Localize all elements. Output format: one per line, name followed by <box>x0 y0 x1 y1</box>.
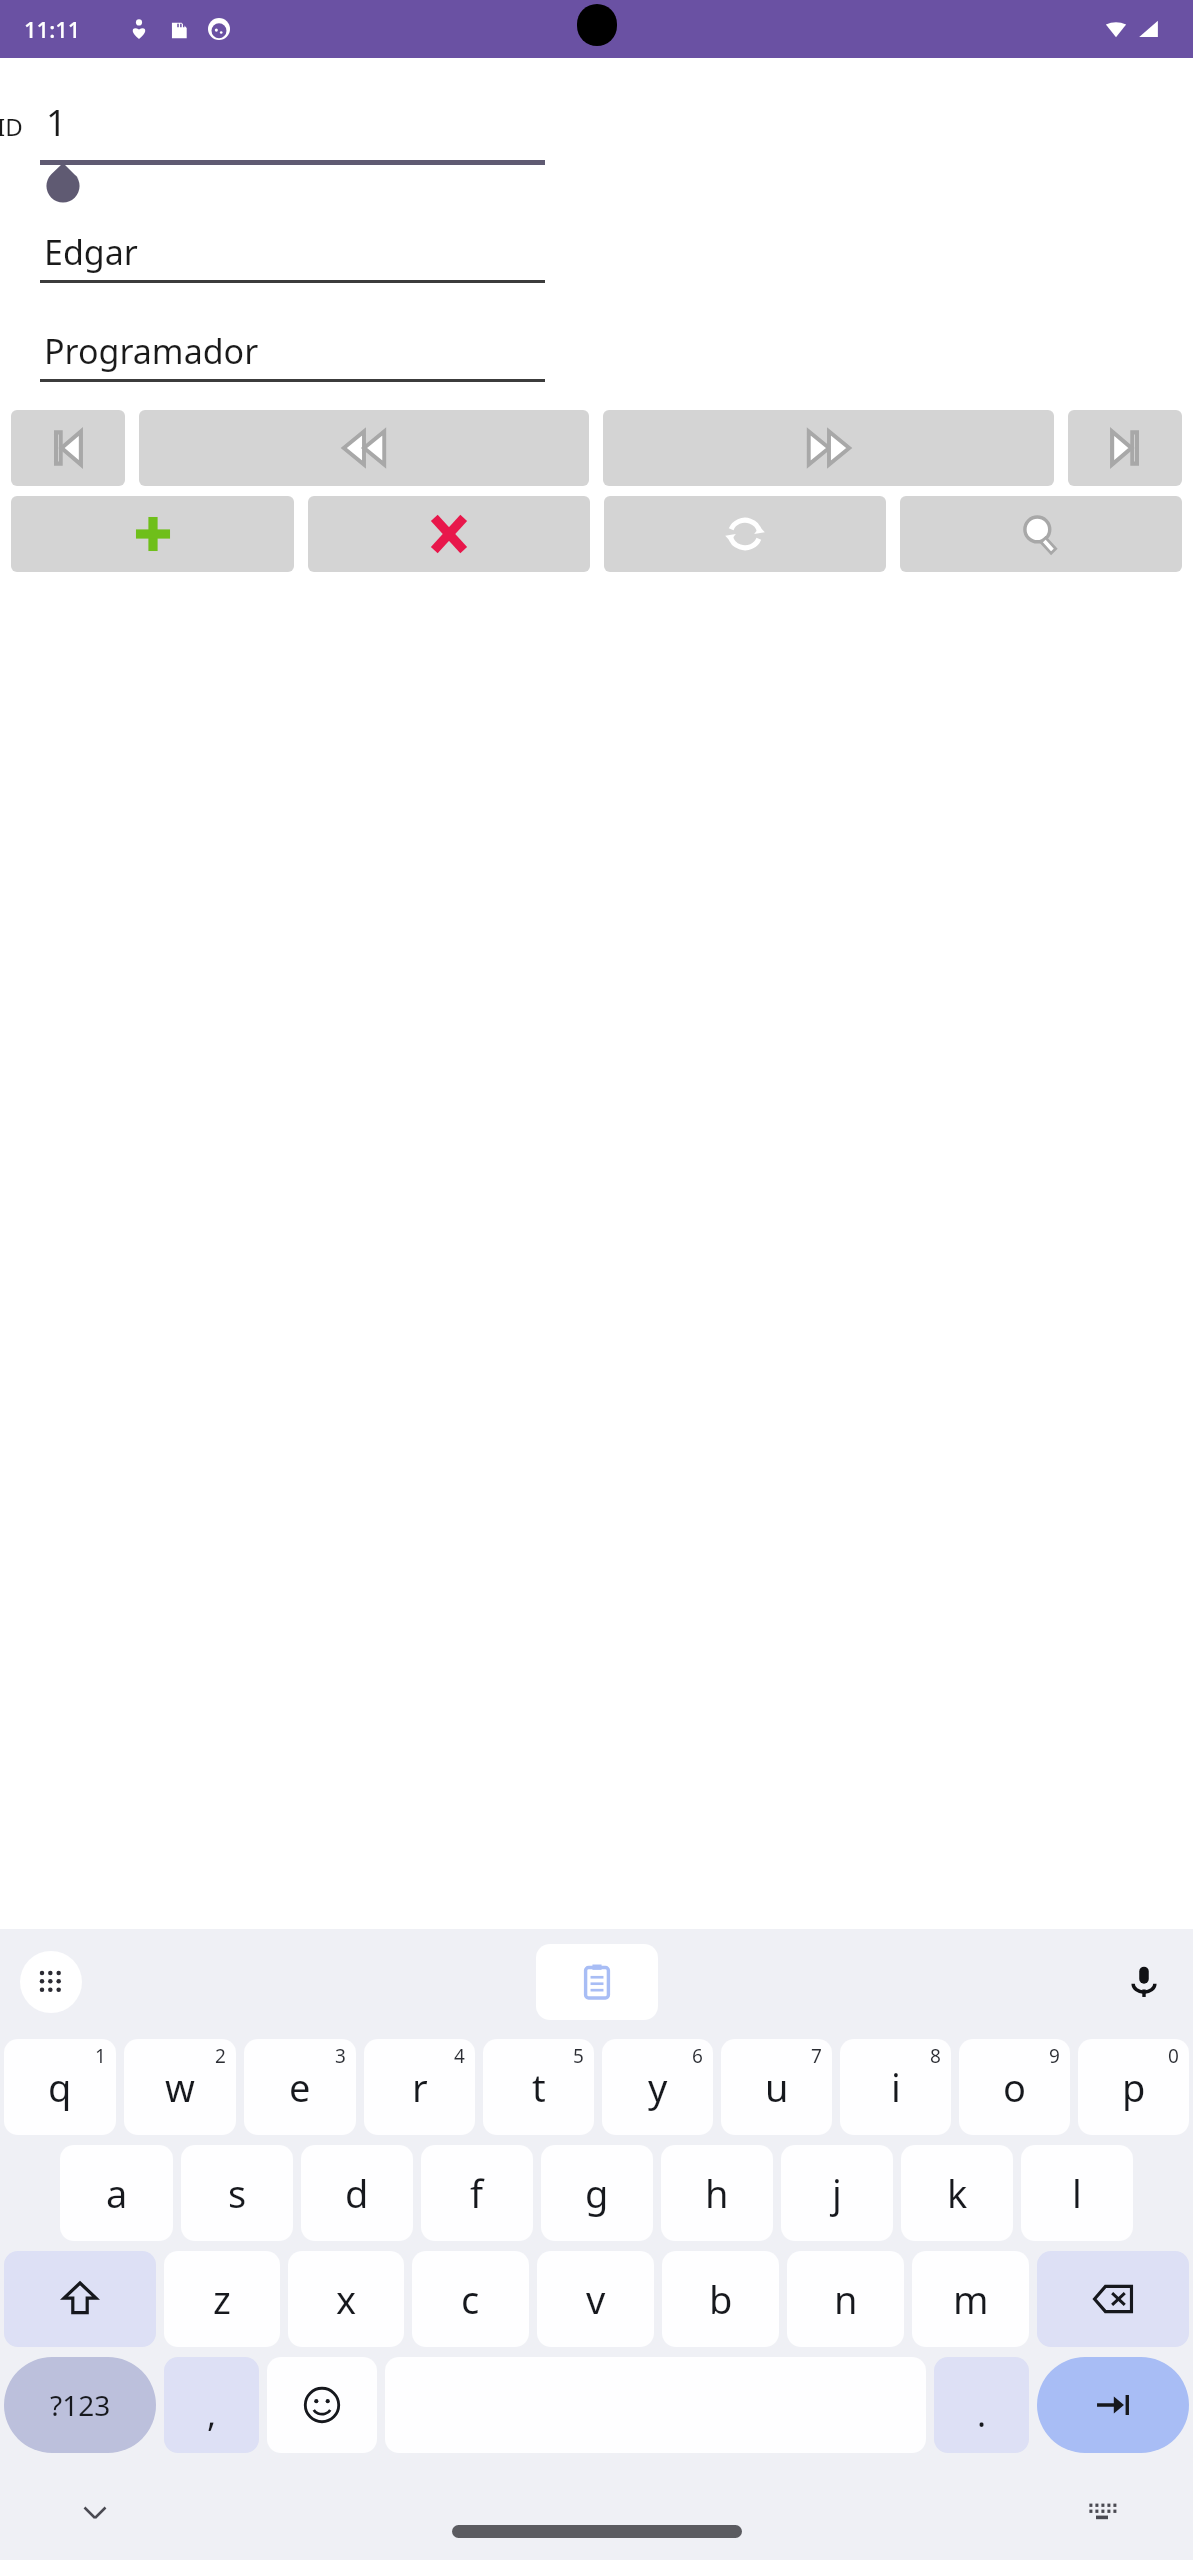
button[interactable]: Voz <box>1115 1953 1173 2011</box>
button[interactable]: c <box>412 2251 529 2347</box>
staticText: 2 <box>215 2043 226 2069</box>
button[interactable]: Siguiente campo <box>1037 2357 1189 2453</box>
staticText: 8 <box>930 2043 941 2069</box>
staticText: i <box>891 2061 901 2113</box>
staticText: e <box>289 2061 311 2113</box>
staticText: b <box>709 2273 733 2325</box>
staticText: ID <box>0 110 23 143</box>
button[interactable]: f <box>421 2145 533 2241</box>
staticText: d <box>345 2167 369 2219</box>
button[interactable]: Portapapeles <box>536 1944 658 2020</box>
staticText: j <box>832 2167 842 2219</box>
staticText: 9 <box>1049 2043 1060 2069</box>
staticText: 6 <box>692 2043 703 2069</box>
button[interactable]: Borrar <box>1037 2251 1189 2347</box>
button[interactable]: z <box>164 2251 280 2347</box>
button[interactable]: Cambiar teclado <box>1079 2489 1125 2535</box>
staticText: v <box>586 2273 606 2325</box>
staticText: c <box>461 2273 480 2325</box>
button[interactable]: v <box>537 2251 654 2347</box>
staticText: h <box>705 2167 729 2219</box>
button[interactable]: Buscar <box>900 496 1182 572</box>
button[interactable]: d <box>301 2145 413 2241</box>
button[interactable]: Siguiente <box>603 410 1054 486</box>
staticText: a <box>106 2167 128 2219</box>
button[interactable]: Actualizar <box>604 496 886 572</box>
staticText: m <box>953 2273 989 2325</box>
button[interactable]: . <box>934 2357 1029 2453</box>
staticText: o <box>1003 2061 1026 2113</box>
staticText: n <box>834 2273 858 2325</box>
button[interactable]: Mayusculas <box>4 2251 156 2347</box>
staticText: 7 <box>811 2043 822 2069</box>
button[interactable]: p <box>1078 2039 1189 2135</box>
button[interactable]: Ocultar teclado <box>72 2489 118 2535</box>
staticText: f <box>470 2167 484 2219</box>
staticText: . <box>977 2391 987 2437</box>
staticText: k <box>947 2167 968 2219</box>
staticText: Edgar <box>44 229 138 275</box>
button[interactable]: n <box>787 2251 904 2347</box>
staticText: 11:11 <box>24 14 81 44</box>
staticText: 1 <box>95 2043 106 2069</box>
button[interactable]: w <box>124 2039 236 2135</box>
button[interactable]: y <box>602 2039 713 2135</box>
button[interactable]: r <box>364 2039 475 2135</box>
button[interactable]: k <box>901 2145 1013 2241</box>
button[interactable]: Menu <box>20 1951 82 2013</box>
button[interactable]: Eliminar <box>308 496 590 572</box>
button[interactable]: t <box>483 2039 594 2135</box>
staticText: y <box>648 2061 668 2113</box>
button[interactable]: q <box>4 2039 116 2135</box>
staticText: 4 <box>454 2043 465 2069</box>
staticText: z <box>213 2273 231 2325</box>
staticText: q <box>48 2061 72 2113</box>
button[interactable]: x <box>288 2251 404 2347</box>
staticText: g <box>585 2167 609 2219</box>
button[interactable]: Emoji <box>267 2357 377 2453</box>
button[interactable]: i <box>840 2039 951 2135</box>
staticText: , <box>207 2391 217 2437</box>
button[interactable]: b <box>662 2251 779 2347</box>
button[interactable]: g <box>541 2145 653 2241</box>
staticText: w <box>165 2061 195 2113</box>
staticText: 5 <box>573 2043 584 2069</box>
button[interactable]: a <box>60 2145 173 2241</box>
button[interactable]: Anterior <box>139 410 589 486</box>
button[interactable]: l <box>1021 2145 1133 2241</box>
button[interactable]: Agregar <box>11 496 294 572</box>
button[interactable]: u <box>721 2039 832 2135</box>
staticText: t <box>532 2061 546 2113</box>
staticText: s <box>228 2167 247 2219</box>
staticText: 1 <box>46 98 67 147</box>
staticText: Programador <box>44 328 259 374</box>
staticText: ?123 <box>50 2386 111 2424</box>
staticText: u <box>765 2061 789 2113</box>
button[interactable]: Ultimo <box>1068 410 1182 486</box>
staticText: l <box>1072 2167 1082 2219</box>
staticText: x <box>336 2273 357 2325</box>
button[interactable]: , <box>164 2357 259 2453</box>
button[interactable]: o <box>959 2039 1070 2135</box>
button[interactable]: s <box>181 2145 293 2241</box>
button[interactable]: e <box>244 2039 356 2135</box>
button[interactable]: m <box>912 2251 1029 2347</box>
staticText: p <box>1122 2061 1146 2113</box>
staticText: r <box>412 2061 428 2113</box>
button[interactable]: j <box>781 2145 893 2241</box>
staticText: 3 <box>335 2043 346 2069</box>
staticText: 0 <box>1168 2043 1179 2069</box>
button[interactable]: h <box>661 2145 773 2241</box>
button[interactable]: ?123 <box>4 2357 156 2453</box>
button[interactable]: Primero <box>11 410 125 486</box>
